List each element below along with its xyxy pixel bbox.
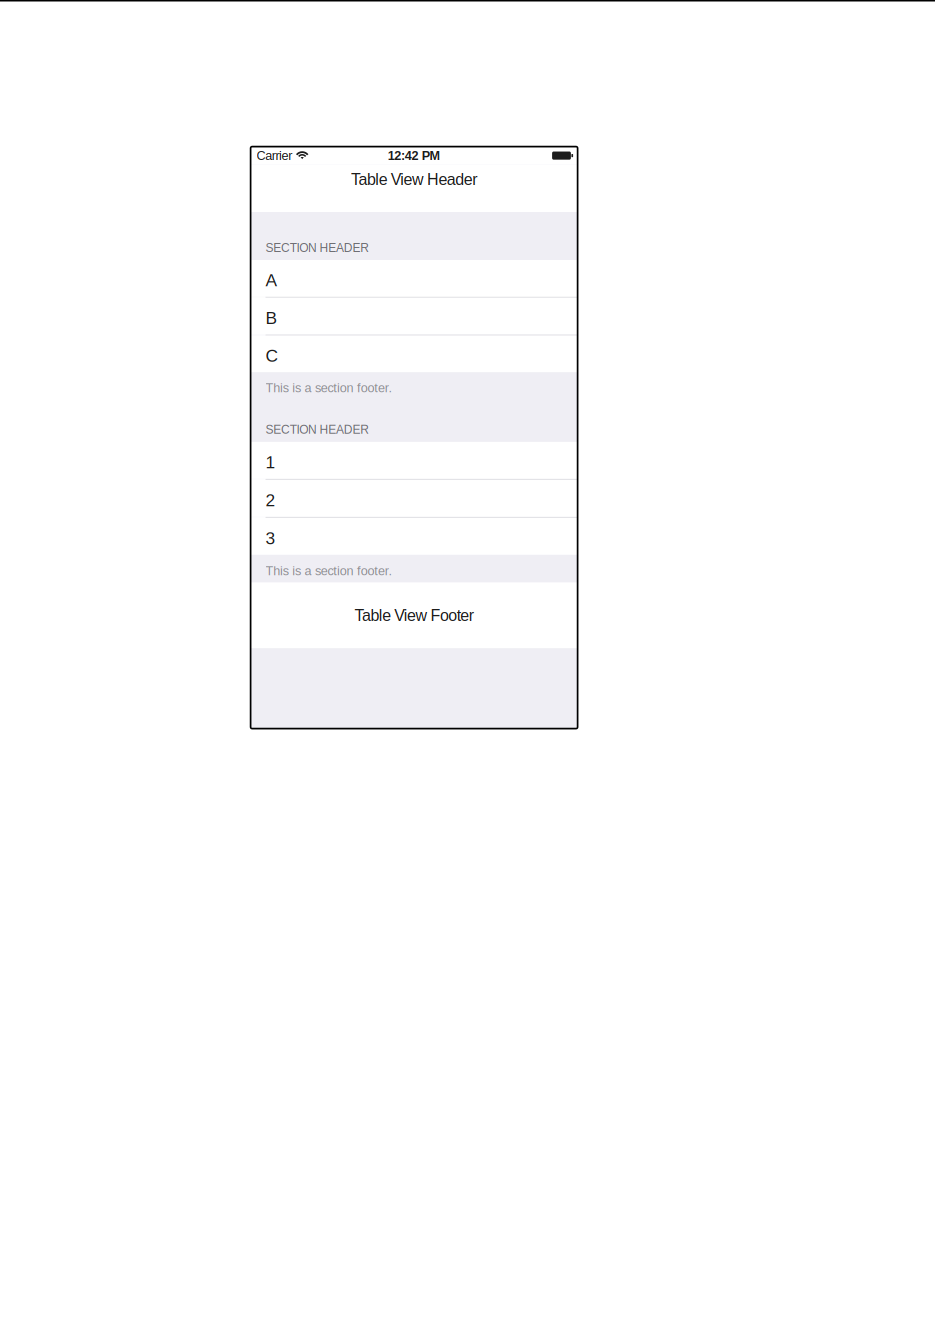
staticText: SECTION HEADER <box>266 241 369 254</box>
staticText: B <box>266 308 278 328</box>
staticText: Table View Footer <box>354 606 474 624</box>
button[interactable]: A <box>251 260 578 297</box>
staticText: SECTION HEADER <box>266 423 369 436</box>
button[interactable]: 2 <box>251 480 578 517</box>
staticText: This is a section footer. <box>266 381 393 395</box>
staticText: A <box>266 270 278 290</box>
button[interactable]: 1 <box>251 442 578 479</box>
staticText: 12:42 PM <box>388 148 440 163</box>
button[interactable]: C <box>251 336 578 372</box>
staticText: Table View Header <box>351 171 477 188</box>
staticText: Carrier <box>257 148 292 163</box>
staticText: 3 <box>266 528 276 548</box>
button[interactable]: 3 <box>251 518 578 555</box>
staticText: 1 <box>266 452 276 472</box>
staticText: 2 <box>266 490 276 510</box>
button[interactable]: B <box>251 298 578 335</box>
staticText: C <box>266 346 279 365</box>
staticText: This is a section footer. <box>266 564 393 578</box>
